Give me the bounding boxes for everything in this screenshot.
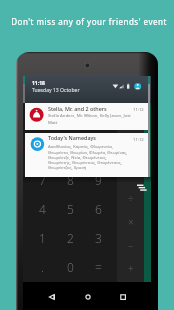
staticText: × — [128, 215, 134, 229]
staticText: ÷ — [128, 192, 134, 206]
staticText: Don't miss any of your friends' event — [11, 16, 167, 27]
button[interactable]: Home — [80, 289, 96, 305]
button[interactable]: 6 — [85, 196, 112, 221]
staticText: 3 — [95, 230, 102, 246]
button[interactable]: 1 — [29, 225, 56, 250]
staticText: Αποθλονίας, Καρπός, Φλωρεντία, — [48, 144, 113, 150]
staticText: Matt — [48, 119, 58, 125]
staticText: 7 — [39, 172, 46, 188]
button[interactable]: × — [118, 211, 144, 233]
staticText: 11:18 — [32, 80, 45, 87]
button[interactable]: = — [85, 254, 112, 279]
staticText: Θεωρέντης, Θεωρέντιος, Θεορέντσος, — [48, 160, 122, 166]
button[interactable]: Open scientific panel — [135, 182, 149, 194]
staticText: 1 — [39, 230, 46, 246]
staticText: − — [128, 239, 134, 253]
button[interactable]: Back — [44, 289, 60, 305]
button[interactable]: 8 — [57, 167, 84, 192]
staticText: Stella, Mr. and 2 others — [48, 105, 107, 112]
button[interactable]: + — [118, 257, 144, 279]
staticText: Θεωρέντα, Θεωρίνα, Φλωρέα, Θεωρίνας, — [48, 150, 128, 156]
button[interactable]: 4 — [29, 196, 56, 221]
button[interactable]: 5 — [57, 196, 84, 221]
button[interactable]: 3 — [85, 225, 112, 250]
staticText: 5 — [67, 201, 74, 217]
staticText: . — [41, 259, 44, 275]
staticText: Θεωρέντζε, Ντία, Θεωρέντιος, — [48, 155, 107, 161]
staticText: 9 — [95, 172, 102, 188]
button[interactable]: ÷ — [118, 188, 144, 210]
button[interactable]: 7 — [29, 167, 56, 192]
staticText: Stella Anders, Mr. Wilson, Kelly Jason, … — [48, 112, 131, 118]
button[interactable]: Today's Namedays — [25, 133, 148, 177]
button[interactable]: 9 — [85, 167, 112, 192]
staticText: Θεωρέντζος, Χρυσή — [48, 165, 87, 171]
staticText: + — [128, 261, 134, 275]
staticText: 6 — [95, 201, 102, 217]
staticText: 11:12 — [133, 137, 144, 143]
button[interactable]: 0 — [57, 254, 84, 279]
staticText: = — [95, 259, 102, 275]
button[interactable]: Recent apps — [115, 289, 131, 305]
staticText: 8 — [67, 172, 74, 188]
button[interactable]: Stella, Mr. and 2 others — [25, 103, 148, 130]
staticText: 0 — [67, 259, 74, 275]
staticText: Tuesday 13 October — [32, 87, 80, 94]
staticText: Today's Namedays — [48, 134, 96, 141]
button[interactable]: 2 — [57, 225, 84, 250]
staticText: 11:12 — [133, 107, 144, 113]
staticText: 2 — [67, 230, 74, 246]
staticText: 4 — [39, 201, 46, 217]
